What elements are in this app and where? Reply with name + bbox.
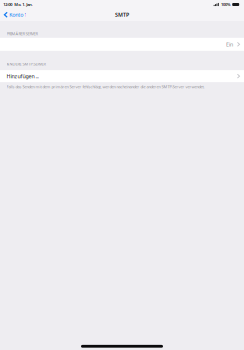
staticText: Hinzufügen ... xyxy=(6,73,38,80)
staticText: Konto 1 xyxy=(9,11,27,18)
staticText: 100% xyxy=(221,2,231,7)
staticText: PRIMÄRER SERVER xyxy=(6,31,37,36)
button[interactable]: Hinzufügen ... xyxy=(0,70,244,82)
button[interactable]: Ein xyxy=(0,38,244,51)
button[interactable]: Konto 1 xyxy=(0,9,31,21)
staticText: Falls das Senden mit dem primären Server… xyxy=(6,84,204,89)
staticText: 12:00 Mo. 1. Jan. xyxy=(3,2,33,7)
staticText: Ein xyxy=(226,41,233,48)
staticText: SMTP xyxy=(115,11,129,18)
staticText: ANDERE SMTP-SERVER xyxy=(6,61,45,67)
